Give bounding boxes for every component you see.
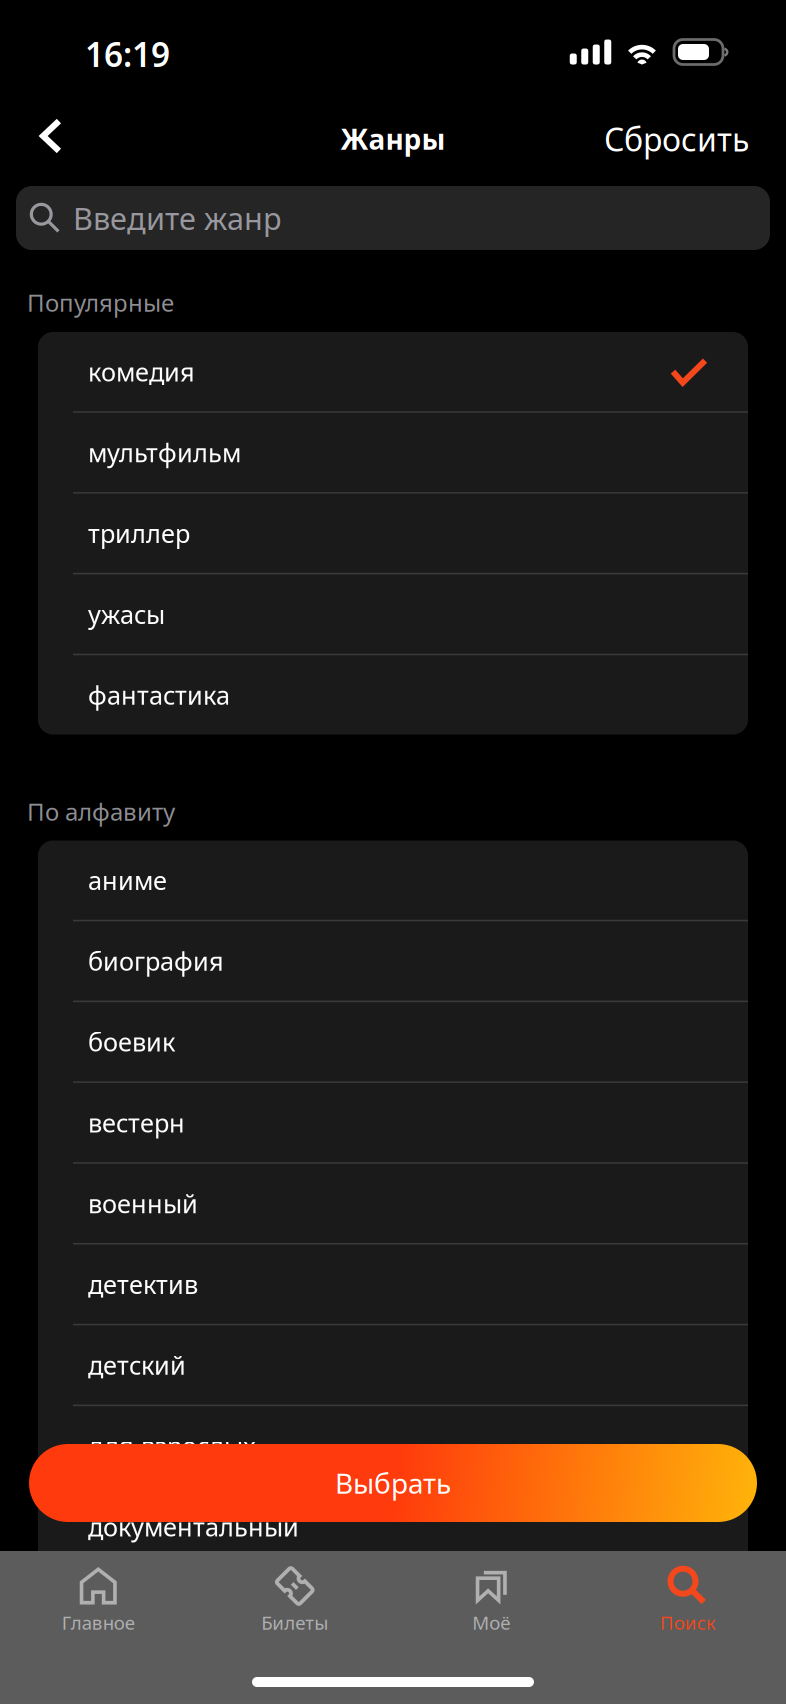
staticText: ужасы (88, 597, 165, 631)
staticText: По алфавиту (27, 796, 175, 827)
staticText: Билеты (261, 1610, 328, 1635)
staticText: биография (88, 944, 224, 978)
button[interactable]: Моё (393, 1551, 589, 1669)
button[interactable]: ужасы (38, 574, 748, 654)
button[interactable]: мультфильм (38, 413, 748, 492)
button[interactable]: Билеты (196, 1551, 393, 1669)
staticText: военный (88, 1186, 198, 1220)
staticText: Моё (472, 1610, 510, 1635)
button[interactable]: военный (38, 1164, 748, 1243)
staticText: Поиск (660, 1610, 716, 1635)
staticText: боевик (88, 1025, 175, 1058)
staticText: Жанры (340, 120, 445, 158)
staticText: 16:19 (85, 32, 170, 76)
button[interactable]: аниме (38, 840, 748, 920)
staticText: комедия (88, 355, 195, 388)
staticText: Введите жанр (73, 198, 282, 238)
staticText: детский (88, 1348, 186, 1382)
staticText: мультфильм (88, 436, 241, 469)
staticText: Сбросить (604, 118, 749, 160)
button[interactable]: документальный (38, 1487, 748, 1566)
button[interactable]: Back (14, 97, 88, 181)
button[interactable]: Поиск (589, 1551, 786, 1669)
button[interactable]: для взрослых (38, 1406, 748, 1485)
staticText: Популярные (27, 287, 174, 318)
staticText: Выбрать (335, 1464, 451, 1502)
button[interactable]: триллер (38, 494, 748, 573)
button[interactable]: детский (38, 1325, 748, 1405)
button[interactable]: комедия (38, 332, 748, 411)
button[interactable]: Сбросить (590, 97, 763, 181)
staticText: фантастика (88, 678, 230, 712)
button[interactable]: детектив (38, 1244, 748, 1324)
button[interactable]: Главное (0, 1551, 196, 1669)
button[interactable]: Выбрать (29, 1444, 757, 1522)
staticText: Главное (62, 1610, 135, 1635)
button[interactable]: вестерн (38, 1083, 748, 1162)
staticText: аниме (88, 863, 167, 897)
button[interactable]: биография (38, 921, 748, 1001)
button[interactable]: фантастика (38, 655, 748, 734)
staticText: триллер (88, 516, 190, 550)
button[interactable]: боевик (38, 1002, 748, 1081)
staticText: вестерн (88, 1106, 185, 1139)
staticText: детектив (88, 1267, 198, 1301)
staticText: для взрослых (88, 1429, 256, 1462)
staticText: документальный (88, 1510, 299, 1543)
